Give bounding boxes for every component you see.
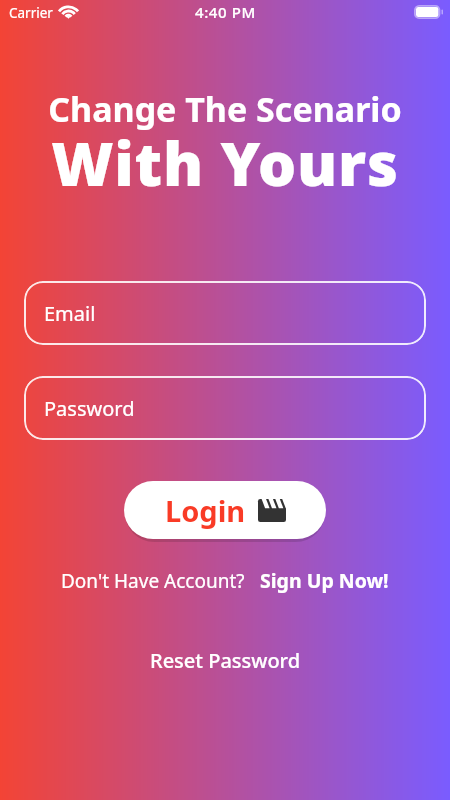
staticText: Password <box>44 395 135 422</box>
button[interactable]: Email <box>24 281 426 345</box>
button[interactable]: Reset Password <box>140 643 311 678</box>
other: Battery full <box>414 5 443 19</box>
staticText: Don't Have Account? <box>61 568 245 594</box>
staticText: 4:40 PM <box>195 2 256 22</box>
other: Movie clapperboard <box>258 499 286 522</box>
staticText: Email <box>44 300 96 327</box>
staticText: Sign Up Now! <box>260 567 389 594</box>
staticText: With Yours <box>0 122 450 204</box>
staticText: Reset Password <box>150 647 301 674</box>
button[interactable]: Sign Up Now! <box>260 565 389 596</box>
button[interactable]: Login <box>124 481 326 539</box>
button[interactable]: Password <box>24 376 426 440</box>
staticText: Carrier <box>9 4 53 22</box>
other: Wi-Fi signal <box>59 5 78 19</box>
staticText: Change The Scenario <box>0 86 450 132</box>
staticText: Login <box>165 491 246 530</box>
